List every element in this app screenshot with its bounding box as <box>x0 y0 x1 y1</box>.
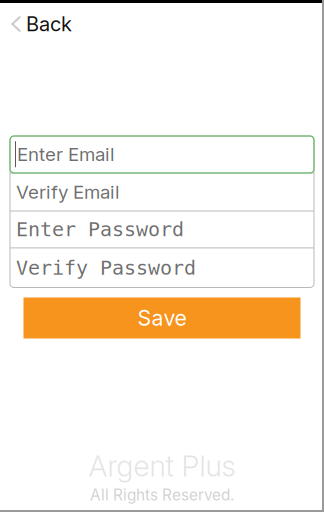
button[interactable]: Back <box>0 0 82 42</box>
button[interactable]: Enter Password <box>10 211 314 247</box>
staticText: Back <box>26 12 72 36</box>
button[interactable]: Enter Email <box>10 136 314 172</box>
staticText: Enter Password <box>16 218 184 241</box>
staticText: Verify Email <box>16 181 120 203</box>
staticText: Save <box>137 305 186 331</box>
staticText: Verify Password <box>16 256 196 280</box>
staticText: Enter Email <box>17 143 115 166</box>
staticText: All Rights Reserved. <box>90 486 234 504</box>
staticText: Argent Plus <box>88 449 235 483</box>
button[interactable]: Verify Password <box>10 248 314 287</box>
button[interactable]: Save <box>23 297 300 338</box>
button[interactable]: Verify Email <box>10 173 314 210</box>
